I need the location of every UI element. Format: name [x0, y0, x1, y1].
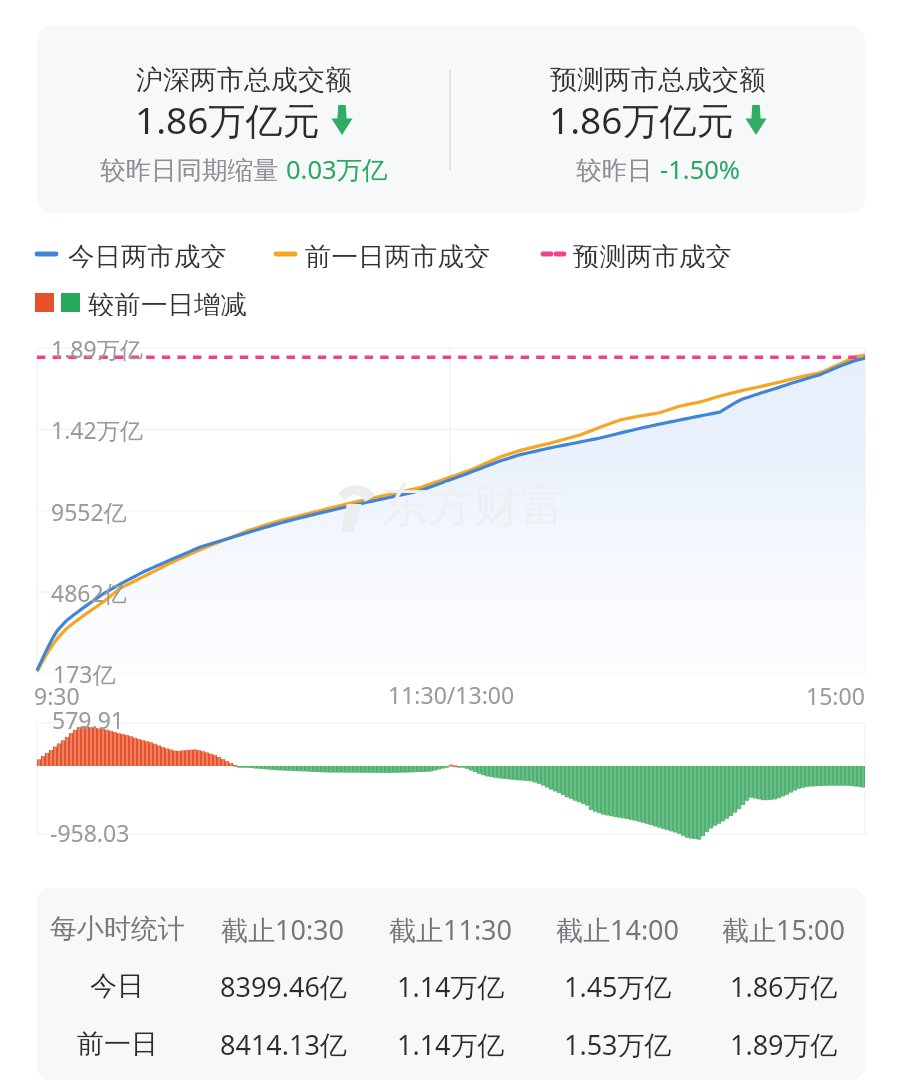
staticText: 1.42万亿: [51, 414, 143, 445]
staticText: 1.86万亿元: [135, 94, 320, 145]
staticText: 15:00: [806, 680, 865, 711]
staticText: 8399.46亿: [220, 968, 347, 1005]
staticText: 1.89万亿: [51, 333, 143, 364]
staticText: -958.03: [50, 817, 130, 848]
staticText: 579.91: [52, 704, 124, 735]
staticText: 1.89万亿: [730, 1026, 838, 1063]
staticText: 11:30/13:00: [388, 679, 515, 710]
staticText: 截止10:30: [221, 911, 345, 948]
staticText: 今日两市成交: [68, 240, 227, 268]
staticText: 1.86万亿元: [549, 94, 734, 145]
staticText: 前一日两市成交: [305, 240, 491, 268]
staticText: -1.50%: [660, 152, 740, 187]
staticText: 1.14万亿: [397, 1026, 505, 1063]
staticText: 0.03万亿: [286, 152, 388, 187]
staticText: 1.53万亿: [564, 1026, 672, 1063]
staticText: 1.86万亿: [730, 968, 838, 1005]
staticText: 8414.13亿: [220, 1026, 347, 1063]
staticText: 较前一日增减: [88, 288, 247, 316]
staticText: 173亿: [53, 658, 116, 689]
staticText: 前一日: [77, 1027, 158, 1061]
button[interactable]: 沪深两市总成交额: [37, 26, 865, 213]
staticText: 预测两市成交: [573, 240, 732, 268]
staticText: 每小时统计: [50, 912, 185, 946]
staticText: 9552亿: [51, 496, 127, 527]
staticText: 4862亿: [51, 577, 127, 608]
staticText: 截止15:00: [722, 911, 846, 948]
staticText: 预测两市总成交额: [550, 63, 766, 97]
staticText: 1.14万亿: [397, 968, 505, 1005]
staticText: 9:30: [34, 680, 80, 711]
staticText: 沪深两市总成交额: [136, 63, 352, 97]
staticText: 东方财富: [382, 477, 566, 535]
staticText: 截止11:30: [389, 911, 513, 948]
staticText: 较昨日: [576, 152, 660, 187]
staticText: 今日: [90, 969, 144, 1003]
button[interactable]: 每小时统计: [37, 888, 865, 1080]
staticText: 1.45万亿: [564, 968, 672, 1005]
staticText: 较昨日同期缩量: [100, 152, 286, 187]
staticText: 截止14:00: [556, 911, 680, 948]
